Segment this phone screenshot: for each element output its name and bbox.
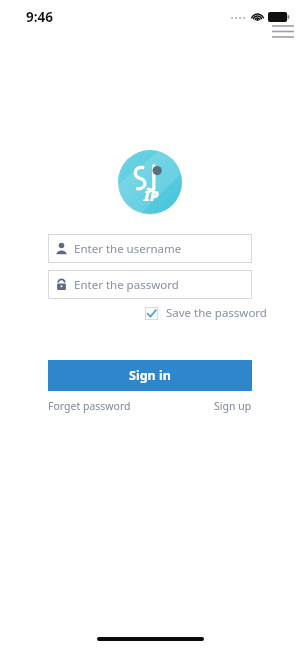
button[interactable]: Enter the username: [48, 234, 252, 263]
staticText: IP: [144, 186, 159, 205]
staticText: Enter the password: [74, 277, 179, 293]
staticText: Forget password: [48, 399, 131, 413]
staticText: Sign in: [129, 367, 171, 384]
button[interactable]: Enter the password: [48, 270, 252, 299]
staticText: Enter the username: [74, 241, 182, 257]
button[interactable]: Save the password: [143, 303, 269, 323]
button[interactable]: Menu: [272, 24, 294, 39]
button[interactable]: Sign up: [214, 397, 252, 415]
button[interactable]: Forget password: [48, 397, 131, 415]
button[interactable]: Sign in: [48, 360, 252, 391]
staticText: Sign up: [214, 399, 252, 413]
staticText: 9:46: [26, 8, 53, 26]
staticText: Save the password: [166, 305, 267, 321]
